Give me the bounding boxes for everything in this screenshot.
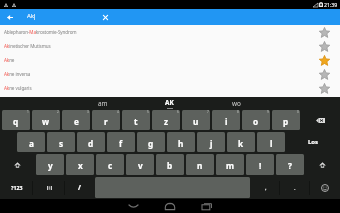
- button[interactable]: s: [47, 132, 75, 152]
- button[interactable]: Favourite: [318, 68, 331, 81]
- staticText: am: [98, 99, 108, 108]
- button[interactable]: Recent apps: [195, 199, 219, 213]
- staticText: d: [88, 138, 94, 149]
- staticText: Akne inversa: [4, 71, 31, 77]
- staticText: j: [210, 138, 213, 149]
- button[interactable]: Emoji: [310, 176, 340, 199]
- staticText: i: [225, 116, 228, 127]
- button[interactable]: Symbols: [0, 176, 33, 199]
- button[interactable]: y: [36, 154, 64, 175]
- button[interactable]: Favourite: [318, 54, 331, 67]
- button[interactable]: Shift: [305, 153, 340, 176]
- staticText: s: [59, 138, 64, 149]
- staticText: 3: [87, 110, 89, 114]
- staticText: 7: [207, 110, 209, 114]
- button[interactable]: Change keyboard: [33, 176, 65, 199]
- staticText: l: [270, 138, 273, 149]
- button[interactable]: t: [122, 110, 150, 130]
- button[interactable]: Akne vulgaris: [0, 81, 340, 95]
- staticText: z: [164, 116, 169, 127]
- button[interactable]: a: [17, 132, 45, 152]
- staticText: 9: [267, 110, 269, 114]
- staticText: b: [167, 160, 173, 171]
- staticText: y: [48, 160, 53, 171]
- button[interactable]: h: [167, 132, 195, 152]
- staticText: m: [226, 160, 234, 171]
- button[interactable]: Comma: [251, 176, 280, 199]
- staticText: g: [148, 138, 154, 149]
- staticText: ?123: [11, 184, 23, 191]
- button[interactable]: f: [107, 132, 135, 152]
- button[interactable]: Ablepharon-Makrostomie-Syndrom: [0, 25, 340, 39]
- button[interactable]: am: [70, 97, 136, 109]
- staticText: h: [178, 138, 184, 149]
- button[interactable]: Shift: [0, 153, 35, 176]
- button[interactable]: o: [242, 110, 270, 130]
- staticText: /: [78, 183, 81, 193]
- staticText: 2: [57, 110, 59, 114]
- button[interactable]: d: [77, 132, 105, 152]
- staticText: !: [259, 160, 262, 171]
- button[interactable]: m: [216, 154, 244, 175]
- button[interactable]: u: [182, 110, 210, 130]
- staticText: Akinetischer Mutismus: [4, 43, 51, 49]
- staticText: .: [294, 184, 296, 192]
- button[interactable]: Akne inversa: [0, 67, 340, 81]
- button[interactable]: q: [2, 110, 30, 130]
- staticText: x: [78, 160, 83, 171]
- button[interactable]: r: [92, 110, 120, 130]
- button[interactable]: Favourite: [318, 82, 331, 95]
- button[interactable]: n: [186, 154, 214, 175]
- button[interactable]: Slash: [65, 176, 94, 199]
- staticText: 0: [297, 110, 299, 114]
- button[interactable]: p: [272, 110, 300, 130]
- button[interactable]: j: [197, 132, 225, 152]
- button[interactable]: g: [137, 132, 165, 152]
- staticText: wo: [232, 99, 241, 108]
- button[interactable]: w: [32, 110, 60, 130]
- button[interactable]: ?: [276, 154, 304, 175]
- button[interactable]: Favourite: [318, 40, 331, 53]
- button[interactable]: e: [62, 110, 90, 130]
- staticText: 5: [147, 110, 149, 114]
- button[interactable]: x: [66, 154, 94, 175]
- button[interactable]: Back: [1, 9, 19, 25]
- button[interactable]: b: [156, 154, 184, 175]
- staticText: 4: [117, 110, 119, 114]
- button[interactable]: i: [212, 110, 240, 130]
- button[interactable]: z: [152, 110, 180, 130]
- staticText: 6: [177, 110, 179, 114]
- staticText: u: [193, 116, 199, 127]
- staticText: Ak: [27, 12, 35, 20]
- staticText: Akne: [4, 57, 15, 63]
- staticText: k: [238, 138, 244, 149]
- button[interactable]: v: [126, 154, 154, 175]
- staticText: ?: [288, 160, 292, 171]
- staticText: q: [13, 116, 19, 127]
- button[interactable]: l: [257, 132, 285, 152]
- button[interactable]: Clear search: [97, 9, 114, 25]
- button[interactable]: AK: [136, 97, 203, 109]
- staticText: n: [197, 160, 203, 171]
- staticText: o: [253, 116, 259, 127]
- button[interactable]: Go: [287, 131, 339, 153]
- button[interactable]: c: [96, 154, 124, 175]
- staticText: 8: [237, 110, 239, 114]
- staticText: w: [42, 116, 50, 127]
- staticText: p: [283, 116, 289, 127]
- button[interactable]: wo: [203, 97, 270, 109]
- staticText: c: [108, 160, 113, 171]
- button[interactable]: Home: [158, 199, 182, 213]
- button[interactable]: Favourite: [318, 26, 331, 39]
- button[interactable]: Hide keyboard: [121, 199, 145, 213]
- staticText: AK: [165, 98, 174, 107]
- staticText: e: [74, 116, 79, 127]
- button[interactable]: Backspace: [302, 109, 338, 131]
- button[interactable]: Period: [280, 176, 310, 199]
- button[interactable]: Akinetischer Mutismus: [0, 39, 340, 53]
- button[interactable]: Akne: [0, 53, 340, 67]
- button[interactable]: k: [227, 132, 255, 152]
- staticText: 1: [27, 110, 29, 114]
- button[interactable]: !: [246, 154, 274, 175]
